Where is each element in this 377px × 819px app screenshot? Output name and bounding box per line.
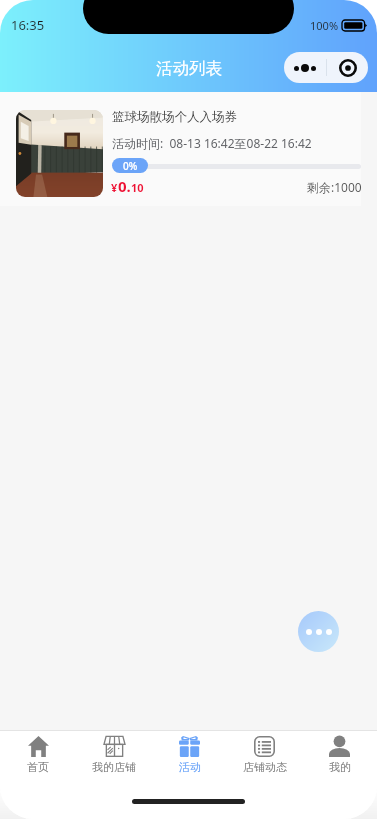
button[interactable]: 我的 [302, 731, 377, 783]
staticText: 100% [310, 18, 339, 33]
staticText: 店铺动态 [243, 760, 287, 774]
staticText: 0% [123, 159, 138, 173]
staticText: 剩余:1000 [307, 179, 362, 195]
staticText: 10 [131, 180, 144, 195]
button[interactable]: 活动 [152, 731, 227, 783]
button[interactable]: Menu [284, 52, 326, 83]
button[interactable]: 我的店铺 [76, 731, 152, 783]
button[interactable]: Close [327, 52, 368, 83]
staticText: 活动时间: 08-13 16:42至08-22 16:42 [112, 135, 312, 151]
staticText: 16:35 [11, 16, 45, 34]
staticText: 我的 [329, 760, 351, 774]
button[interactable]: 店铺动态 [227, 731, 302, 783]
button[interactable]: 首页 [0, 731, 76, 783]
staticText: 活动列表 [156, 58, 222, 79]
staticText: 0. [118, 176, 131, 196]
staticText: 我的店铺 [92, 760, 136, 774]
button[interactable]: More actions [298, 611, 339, 652]
staticText: 活动 [179, 760, 201, 774]
staticText: ¥ [111, 180, 118, 195]
button[interactable]: 篮球场散场个人入场券 [0, 92, 361, 206]
staticText: 篮球场散场个人入场券 [112, 109, 237, 125]
staticText: 首页 [27, 760, 49, 774]
